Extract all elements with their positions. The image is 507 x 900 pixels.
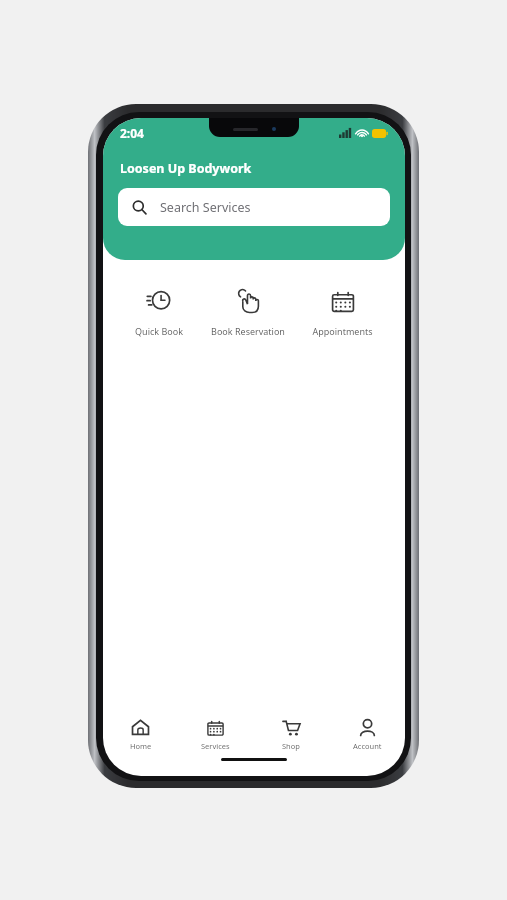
- button[interactable]: Book Reservation: [205, 286, 291, 339]
- button[interactable]: Account: [329, 714, 405, 755]
- button[interactable]: Quick Book: [129, 286, 189, 339]
- button[interactable]: Search Services: [118, 188, 390, 226]
- staticText: Book Reservation: [211, 325, 285, 337]
- staticText: Home: [130, 741, 152, 751]
- staticText: Quick Book: [135, 325, 183, 337]
- staticText: Account: [353, 741, 382, 751]
- button[interactable]: Services: [178, 714, 253, 755]
- button[interactable]: Shop: [253, 714, 329, 755]
- staticText: Loosen Up Bodywork: [120, 160, 252, 177]
- staticText: Services: [201, 741, 230, 751]
- button[interactable]: Appointments: [306, 286, 379, 339]
- staticText: 2:04: [120, 125, 144, 141]
- staticText: Search Services: [160, 199, 251, 216]
- staticText: Shop: [282, 741, 300, 751]
- staticText: Appointments: [312, 325, 373, 337]
- button[interactable]: Home: [103, 714, 178, 755]
